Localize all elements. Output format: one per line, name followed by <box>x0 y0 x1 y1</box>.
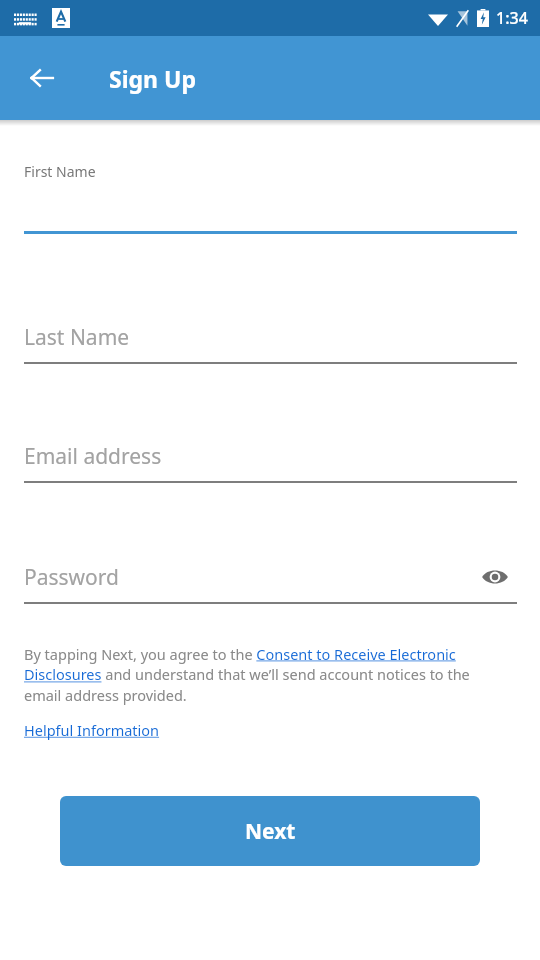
staticText: Sign Up <box>109 63 196 94</box>
staticText: First Name <box>24 162 96 181</box>
button[interactable]: Password <box>24 552 517 602</box>
button[interactable]: Helpful Information <box>24 720 160 740</box>
button[interactable]: Show password <box>473 555 517 599</box>
staticText: Password <box>24 563 119 592</box>
staticText: Helpful Information <box>24 720 160 740</box>
staticText: Next <box>245 817 296 846</box>
staticText: 1:34 <box>496 7 528 29</box>
staticText: Email address <box>24 442 162 471</box>
staticText: Last Name <box>24 323 130 352</box>
button[interactable] <box>24 156 517 234</box>
staticText: By tapping Next, you agree to the Consen… <box>24 644 506 706</box>
button[interactable]: Back <box>14 50 70 106</box>
button[interactable]: Last Name <box>24 312 517 362</box>
button[interactable]: Email address <box>24 431 517 481</box>
button[interactable]: Next <box>60 796 480 866</box>
